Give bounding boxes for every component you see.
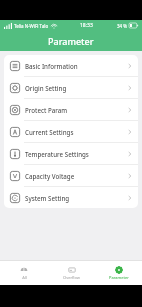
staticText: Protect Param <box>25 106 68 114</box>
staticText: Telia N-WiFi Talo <box>14 23 49 29</box>
staticText: 34 % <box>117 23 128 29</box>
staticText: Overflow <box>63 275 80 280</box>
button[interactable]: Origin Setting <box>4 77 138 98</box>
staticText: Origin Setting <box>25 84 67 92</box>
staticText: Basic Information <box>25 62 78 70</box>
staticText: System Setting <box>25 194 70 202</box>
staticText: Current Settings <box>25 128 74 136</box>
button[interactable]: All <box>0 260 48 285</box>
staticText: Parameter <box>109 275 129 280</box>
button[interactable]: System Setting <box>4 187 138 208</box>
staticText: Temperature Settings <box>25 150 89 158</box>
staticText: 18:33 <box>80 22 93 29</box>
staticText: Parameter <box>48 35 94 47</box>
button[interactable]: Current Settings <box>4 121 138 142</box>
staticText: Capacity Voltage <box>25 172 75 180</box>
button[interactable]: Temperature Settings <box>4 143 138 164</box>
button[interactable]: Protect Param <box>4 99 138 120</box>
button[interactable]: Parameter <box>95 260 142 285</box>
button[interactable]: Capacity Voltage <box>4 165 138 186</box>
button[interactable]: Basic Information <box>4 55 138 76</box>
button[interactable]: Overflow <box>48 260 95 285</box>
staticText: All <box>22 275 27 280</box>
